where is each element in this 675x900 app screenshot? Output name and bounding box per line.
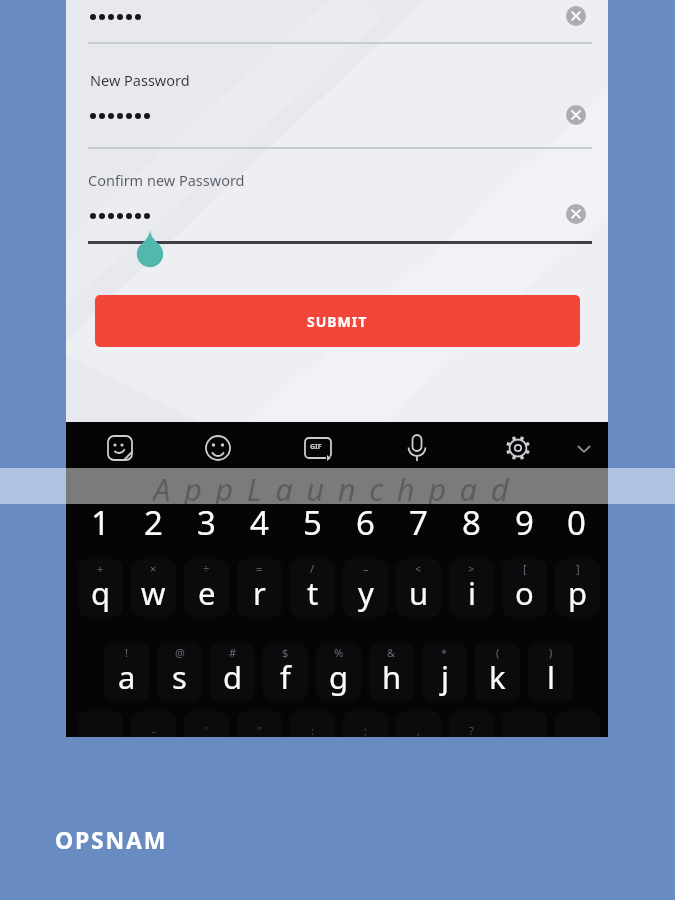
button[interactable] (566, 105, 586, 125)
button[interactable]: @ (157, 643, 202, 701)
staticText: a (118, 656, 136, 698)
button[interactable]: 4 (233, 500, 286, 544)
button[interactable]: 2 (127, 500, 180, 544)
staticText: ' (205, 723, 208, 737)
button[interactable]: 7 (392, 500, 445, 544)
staticText: Confirm new Password (88, 170, 245, 190)
button[interactable] (566, 204, 586, 224)
staticText: g (329, 656, 349, 698)
staticText: % (334, 645, 344, 660)
staticText: ? (469, 723, 474, 737)
button[interactable]: " (237, 711, 282, 737)
staticText: l (547, 656, 555, 698)
staticText: d (223, 656, 243, 698)
button[interactable]: % (316, 643, 361, 701)
button[interactable]: 3 (180, 500, 233, 544)
staticText (361, 724, 370, 737)
button[interactable]: > (449, 559, 494, 617)
staticText: [ (523, 561, 527, 576)
staticText: / (310, 561, 315, 576)
staticText: 6 (356, 500, 375, 544)
staticText (255, 724, 264, 737)
button[interactable]: ! (104, 643, 149, 701)
staticText: e (198, 572, 216, 614)
staticText: ÷ (203, 561, 210, 576)
button[interactable]: 1 (74, 500, 127, 544)
button[interactable]: × (131, 559, 176, 617)
button[interactable]: ; (343, 711, 388, 737)
staticText: @ (175, 645, 185, 660)
button[interactable]: # (210, 643, 255, 701)
button[interactable]: * (422, 643, 467, 701)
staticText: 2 (144, 500, 163, 544)
staticText (149, 724, 158, 737)
staticText: y (358, 572, 374, 614)
staticText: 1 (91, 500, 110, 544)
staticText: w (141, 572, 166, 614)
button[interactable]: 8 (445, 500, 498, 544)
button[interactable]: 0 (551, 500, 601, 544)
staticText: + (97, 561, 104, 576)
button[interactable]: ) (528, 643, 573, 701)
staticText: - (152, 723, 156, 737)
staticText: $ (282, 645, 289, 660)
staticText: ( (496, 645, 500, 660)
button[interactable] (566, 6, 586, 26)
staticText: 0 (567, 500, 586, 544)
button[interactable]: ( (475, 643, 520, 701)
staticText: t (307, 572, 319, 614)
staticText: 4 (250, 500, 269, 544)
staticText: 3 (197, 500, 216, 544)
button[interactable]: 9 (498, 500, 551, 544)
staticText: ) (549, 645, 553, 660)
staticText: o (515, 572, 534, 614)
button[interactable]: ] (555, 559, 600, 617)
staticText: * (441, 645, 448, 660)
staticText (308, 724, 317, 737)
button[interactable]: : (290, 711, 335, 737)
button[interactable]: $ (263, 643, 308, 701)
staticText: ; (364, 723, 367, 737)
button[interactable]: / (290, 559, 335, 617)
staticText: k (489, 656, 506, 698)
staticText: r (253, 572, 266, 614)
staticText: ! (125, 645, 128, 660)
staticText: f (280, 656, 291, 698)
staticText: q (91, 572, 111, 614)
staticText: i (468, 572, 476, 614)
staticText: AppLaunchpad (153, 468, 523, 504)
button[interactable]: 6 (339, 500, 392, 544)
staticText: s (172, 656, 187, 698)
staticText: h (382, 656, 402, 698)
button[interactable]: ? (449, 711, 494, 737)
button[interactable]: [ (502, 559, 547, 617)
staticText: New Password (90, 70, 190, 90)
staticText: ] (576, 561, 580, 576)
staticText: > (468, 561, 475, 576)
button[interactable]: < (396, 559, 441, 617)
button[interactable]: & (369, 643, 414, 701)
button[interactable]: – (343, 559, 388, 617)
staticText: × (150, 561, 157, 576)
button[interactable]: = (237, 559, 282, 617)
staticText: < (415, 561, 422, 576)
staticText (202, 724, 211, 737)
button[interactable]: + (78, 559, 123, 617)
button[interactable]: 5 (286, 500, 339, 544)
staticText (414, 724, 423, 737)
staticText: OPSNAM (55, 824, 168, 855)
staticText: 7 (409, 500, 428, 544)
staticText: SUBMIT (307, 312, 368, 331)
staticText: " (257, 723, 262, 737)
button[interactable]: - (131, 711, 176, 737)
button[interactable]: ÷ (184, 559, 229, 617)
button[interactable]: SUBMIT (95, 295, 580, 347)
staticText: , (417, 723, 420, 737)
